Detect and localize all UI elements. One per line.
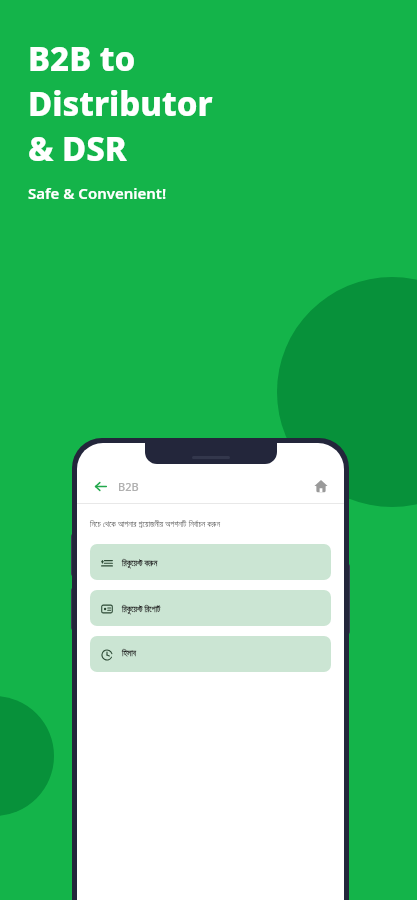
button[interactable]: রিকুয়েস্ট করুন — [90, 544, 331, 580]
staticText: হিসাব — [122, 650, 136, 658]
button[interactable]: Back — [89, 475, 111, 497]
staticText: নিচে থেকে আপনার প্রয়োজনীয় অপশনটি নির্ব… — [90, 518, 221, 529]
staticText: & DSR — [28, 126, 127, 171]
staticText: Safe & Convenient! — [28, 183, 167, 203]
staticText: রিকুয়েস্ট করুন — [122, 557, 158, 568]
button[interactable]: Home — [310, 475, 332, 497]
staticText: রিকুয়েস্ট রিপোর্ট — [122, 603, 161, 614]
staticText: B2B — [118, 479, 139, 494]
button[interactable]: রিকুয়েস্ট রিপোর্ট — [90, 590, 331, 626]
staticText: B2B to — [28, 36, 136, 81]
staticText: Distributor — [28, 81, 213, 126]
button[interactable]: হিসাব — [90, 636, 331, 672]
